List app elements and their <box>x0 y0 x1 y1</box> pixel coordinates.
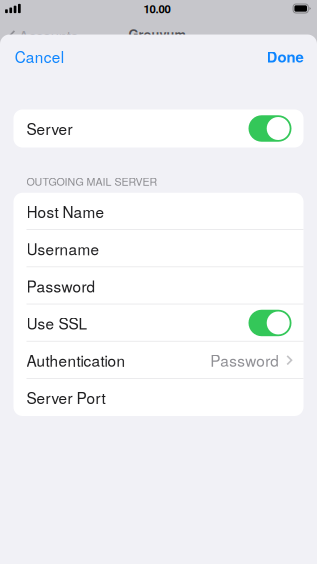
button[interactable]: Accounts <box>6 23 78 45</box>
staticText: Grouvum <box>128 25 185 43</box>
staticText: Password <box>210 349 279 371</box>
staticText: Server <box>26 117 72 139</box>
staticText: Accounts <box>19 25 78 46</box>
button[interactable]: Password <box>13 267 303 304</box>
button[interactable]: Server <box>13 109 303 147</box>
button[interactable]: Done <box>254 34 317 74</box>
staticText: Host Name <box>26 200 104 222</box>
staticText: Server Port <box>26 386 105 408</box>
button[interactable]: Username <box>13 230 303 267</box>
staticText: Password <box>26 275 95 297</box>
button[interactable]: Use SSL <box>13 304 303 342</box>
staticText: Use SSL <box>26 312 87 334</box>
button[interactable]: Cancel <box>0 34 76 74</box>
staticText: 10.00 <box>143 0 170 17</box>
staticText: Cancel <box>15 45 64 67</box>
button[interactable]: Server Port <box>13 379 303 416</box>
staticText <box>236 22 311 46</box>
staticText: Done <box>266 46 303 67</box>
button[interactable]: Authentication <box>13 342 303 379</box>
staticText: Authentication <box>26 349 125 371</box>
staticText: OUTGOING MAIL SERVER <box>26 173 157 189</box>
staticText: Username <box>26 238 99 260</box>
button[interactable]: Host Name <box>13 193 303 230</box>
